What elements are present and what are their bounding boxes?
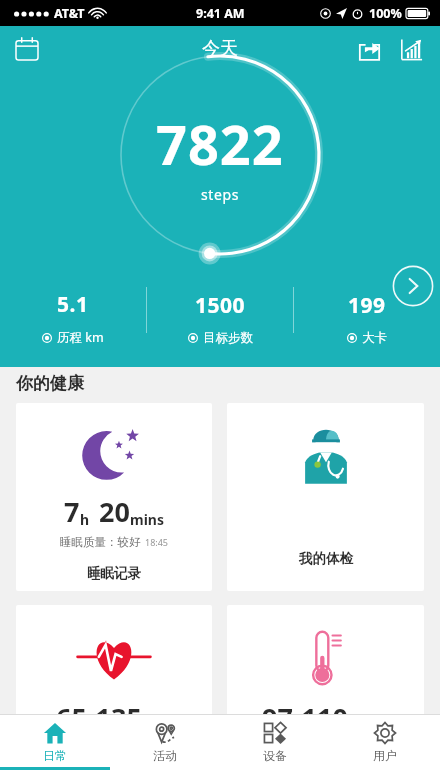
staticText: 9:41 AM bbox=[196, 5, 245, 22]
staticText: bpm bbox=[142, 717, 172, 735]
staticText: 用户 bbox=[373, 748, 397, 763]
button[interactable]: 7 bbox=[16, 403, 212, 591]
staticText: steps bbox=[201, 185, 239, 204]
button[interactable]: Next bbox=[392, 265, 434, 307]
staticText: 97-110 bbox=[262, 699, 348, 736]
button[interactable]: Statistics bbox=[392, 30, 430, 68]
staticText: 199 bbox=[348, 291, 386, 320]
staticText: 历程 km bbox=[57, 329, 104, 346]
staticText: 目标步数 bbox=[203, 330, 253, 346]
button[interactable]: 97-110 bbox=[227, 605, 424, 770]
staticText: mins bbox=[130, 510, 164, 529]
button[interactable]: 7822 bbox=[109, 44, 331, 266]
staticText: 今天 bbox=[202, 37, 238, 60]
button[interactable]: 199 bbox=[294, 287, 440, 349]
staticText: 大卡 bbox=[362, 330, 387, 346]
staticText: AT&T bbox=[54, 5, 85, 22]
staticText: 我的体检 bbox=[299, 550, 353, 567]
staticText: 活动 bbox=[153, 748, 177, 763]
button[interactable]: 1500 bbox=[147, 287, 293, 349]
button[interactable]: 活动 bbox=[110, 715, 220, 770]
button[interactable]: Calendar bbox=[8, 30, 46, 68]
staticText: h bbox=[80, 510, 90, 529]
staticText: 18:45 bbox=[145, 536, 169, 548]
button[interactable]: 设备 bbox=[220, 715, 330, 770]
staticText: 65-135 bbox=[56, 699, 142, 736]
staticText: 睡眠记录 bbox=[87, 565, 141, 582]
staticText: 7822 bbox=[156, 107, 284, 181]
staticText: 5.1 bbox=[57, 290, 89, 319]
button[interactable]: 65-135 bbox=[16, 605, 212, 770]
button[interactable]: 5.1 bbox=[0, 287, 146, 349]
staticText: 100% bbox=[369, 5, 402, 22]
button[interactable]: 我的体检 bbox=[227, 403, 424, 591]
button[interactable]: 用户 bbox=[330, 715, 440, 770]
staticText: 你的健康 bbox=[16, 373, 84, 394]
button[interactable]: Share bbox=[350, 30, 388, 68]
button[interactable]: 日常 bbox=[0, 715, 110, 770]
staticText: 日常 bbox=[43, 748, 67, 763]
staticText: 睡眠质量：较好 bbox=[60, 535, 141, 549]
staticText: 7 bbox=[64, 493, 80, 530]
staticText: 设备 bbox=[263, 748, 287, 763]
staticText: mmHg bbox=[348, 719, 389, 735]
staticText: 20 bbox=[99, 493, 130, 530]
staticText: 1500 bbox=[195, 291, 246, 320]
